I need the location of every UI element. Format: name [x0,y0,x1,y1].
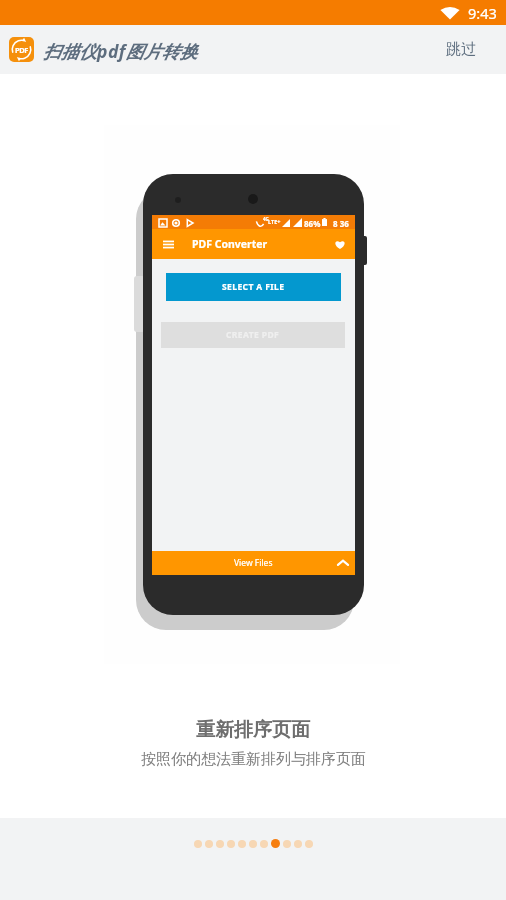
staticText: 扫描仪pdf图片转换 [43,39,198,63]
staticText: PDF [15,45,29,55]
staticText: 8 36 [333,218,349,229]
staticText: 9:43 [468,3,497,23]
staticText: LTE+ [268,218,281,225]
staticText: 按照你的想法重新排列与排序页面 [141,750,366,769]
other: Expand [337,557,349,569]
other: Favorite [334,238,346,250]
staticText: SELECT A FILE [222,281,285,293]
other: Menu [163,239,174,250]
button[interactable]: View Files [152,551,355,575]
staticText: 4G [263,216,269,222]
other: Wi-Fi [440,6,460,20]
staticText: CREATE PDF [226,329,280,341]
staticText: PDF Converter [192,237,268,251]
staticText: 跳过 [446,40,476,59]
button[interactable]: 跳过 [425,30,506,69]
staticText: 86% [304,218,321,229]
staticText: 重新排序页面 [196,718,310,742]
button[interactable]: SELECT A FILE [166,273,341,301]
staticText: View Files [234,557,273,569]
